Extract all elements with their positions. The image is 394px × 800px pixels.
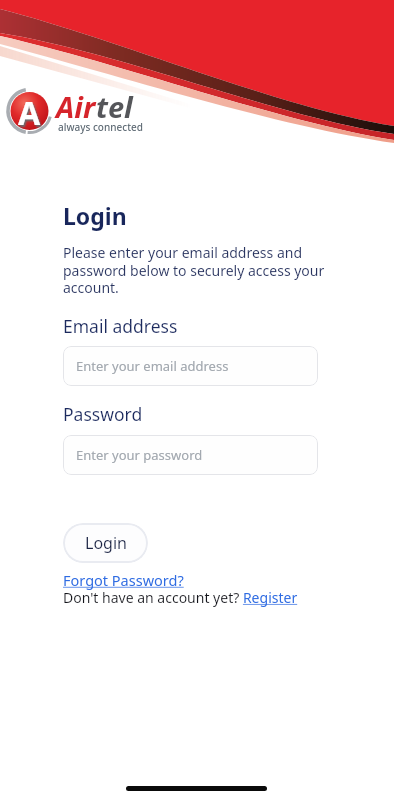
staticText: Please enter your email address and pass… [63,243,325,297]
staticText: Login [63,200,127,231]
button[interactable]: Forgot Password? [63,570,184,590]
staticText: always connected [58,120,143,134]
staticText: Email address [63,314,178,338]
staticText: tel [96,87,133,126]
staticText: Enter your email address [76,357,229,375]
button[interactable]: Don't have an account yet? Register [63,588,298,607]
button[interactable]: Enter your password [63,435,318,475]
staticText: Login [85,532,127,554]
staticText: Air [56,87,96,126]
button[interactable]: Enter your email address [63,346,318,386]
staticText: Enter your password [76,446,203,464]
staticText: A [18,91,41,135]
button[interactable]: Login [63,523,148,563]
staticText: Password [63,402,143,426]
